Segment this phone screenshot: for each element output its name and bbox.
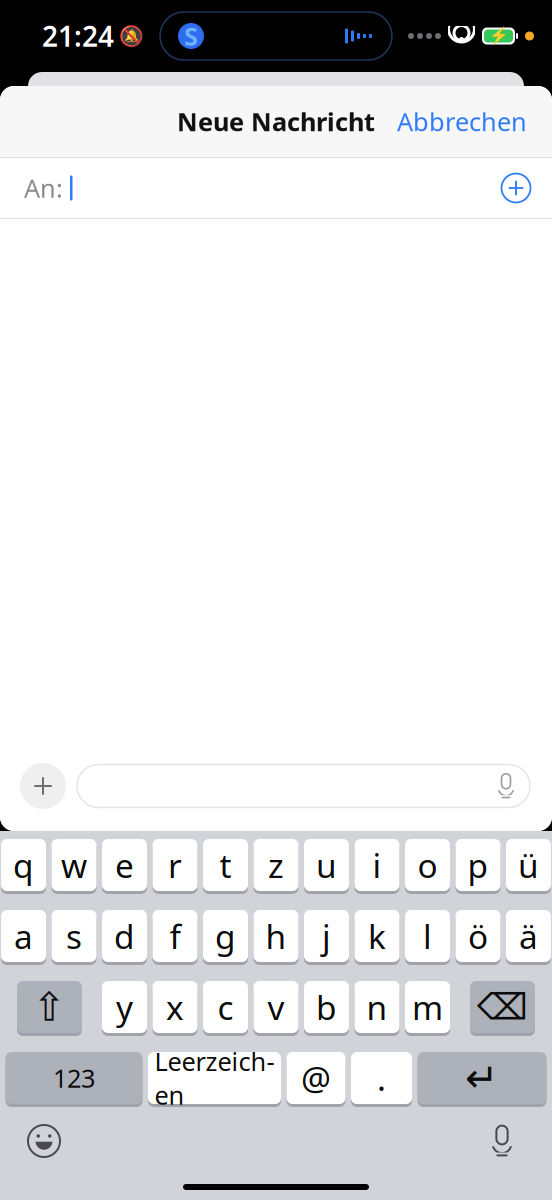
staticText: ä — [519, 914, 538, 958]
button[interactable]: l — [405, 910, 450, 965]
button[interactable]: Diktieren — [474, 1113, 530, 1169]
staticText: z — [268, 843, 284, 887]
staticText: m — [412, 985, 443, 1029]
button[interactable]: @ — [286, 1052, 345, 1107]
button[interactable]: x — [152, 981, 197, 1036]
staticText: Neue Nachricht — [177, 105, 375, 138]
button[interactable]: r — [152, 839, 197, 894]
staticText: j — [322, 914, 331, 958]
button[interactable]: . — [351, 1052, 412, 1107]
button[interactable]: Abbrechen — [385, 97, 539, 146]
staticText: . — [377, 1056, 386, 1100]
staticText: k — [368, 914, 386, 958]
staticText: ⚡ — [488, 27, 508, 45]
staticText: l — [423, 914, 432, 958]
staticText: n — [366, 985, 387, 1029]
button[interactable]: ö — [455, 910, 500, 965]
button[interactable]: Emoji — [16, 1113, 72, 1169]
staticText: ⇧ — [32, 984, 66, 1030]
button[interactable]: ü — [506, 839, 551, 894]
staticText: v — [267, 985, 284, 1029]
staticText: u — [316, 843, 337, 887]
staticText: 21:24 — [42, 17, 114, 55]
button[interactable]: ä — [506, 910, 551, 965]
staticText: e — [115, 843, 134, 887]
staticText: S — [184, 19, 198, 53]
button[interactable]: v — [253, 981, 298, 1036]
button[interactable]: p — [455, 839, 500, 894]
staticText: Abbrechen — [397, 105, 527, 138]
button[interactable]: Leerzeichen — [148, 1052, 281, 1107]
button[interactable]: u — [304, 839, 349, 894]
button[interactable]: Eingabe — [417, 1052, 546, 1107]
staticText: b — [316, 985, 337, 1029]
staticText: r — [168, 843, 182, 887]
button[interactable]: f — [152, 910, 197, 965]
button[interactable]: j — [304, 910, 349, 965]
button[interactable]: b — [304, 981, 349, 1036]
button[interactable]: k — [354, 910, 399, 965]
staticText: y — [116, 985, 133, 1029]
staticText: a — [14, 914, 33, 958]
button[interactable]: z — [253, 839, 298, 894]
button[interactable]: w — [51, 839, 96, 894]
staticText: An: — [24, 171, 63, 205]
staticText: ü — [518, 843, 539, 887]
button[interactable]: y — [102, 981, 147, 1036]
button[interactable]: q — [1, 839, 46, 894]
button[interactable]: m — [405, 981, 450, 1036]
button[interactable]: c — [203, 981, 248, 1036]
button[interactable]: n — [354, 981, 399, 1036]
staticText: p — [467, 843, 488, 887]
button[interactable]: Löschen — [470, 981, 535, 1036]
button[interactable]: h — [253, 910, 298, 965]
staticText: s — [66, 914, 82, 958]
staticText: f — [169, 914, 180, 958]
staticText: @ — [301, 1056, 331, 1100]
button[interactable]: i — [354, 839, 399, 894]
button[interactable]: g — [203, 910, 248, 965]
staticText: o — [417, 843, 437, 887]
staticText: 🔕 — [118, 25, 143, 47]
staticText: t — [219, 843, 231, 887]
staticText: g — [215, 914, 236, 958]
button[interactable]: 123 — [5, 1052, 142, 1107]
button[interactable]: o — [405, 839, 450, 894]
button[interactable]: Kontakt hinzufügen — [494, 166, 538, 210]
staticText: c — [217, 985, 233, 1029]
button[interactable]: s — [51, 910, 96, 965]
button[interactable]: d — [102, 910, 147, 965]
staticText: i — [372, 843, 381, 887]
staticText: q — [13, 843, 34, 887]
button[interactable]: Umschalt — [17, 981, 82, 1036]
staticText: d — [114, 914, 135, 958]
button[interactable]: Anhang hinzufügen — [20, 763, 66, 809]
staticText: ö — [468, 914, 488, 958]
staticText: x — [166, 985, 184, 1029]
staticText: ⌫ — [477, 987, 528, 1027]
staticText: ↵ — [465, 1055, 499, 1101]
staticText: Leerzeichen — [154, 1044, 274, 1112]
staticText: h — [265, 914, 286, 958]
staticText: 123 — [53, 1061, 95, 1095]
staticText: w — [61, 843, 87, 887]
button[interactable]: t — [203, 839, 248, 894]
button[interactable]: e — [102, 839, 147, 894]
button[interactable]: a — [1, 910, 46, 965]
